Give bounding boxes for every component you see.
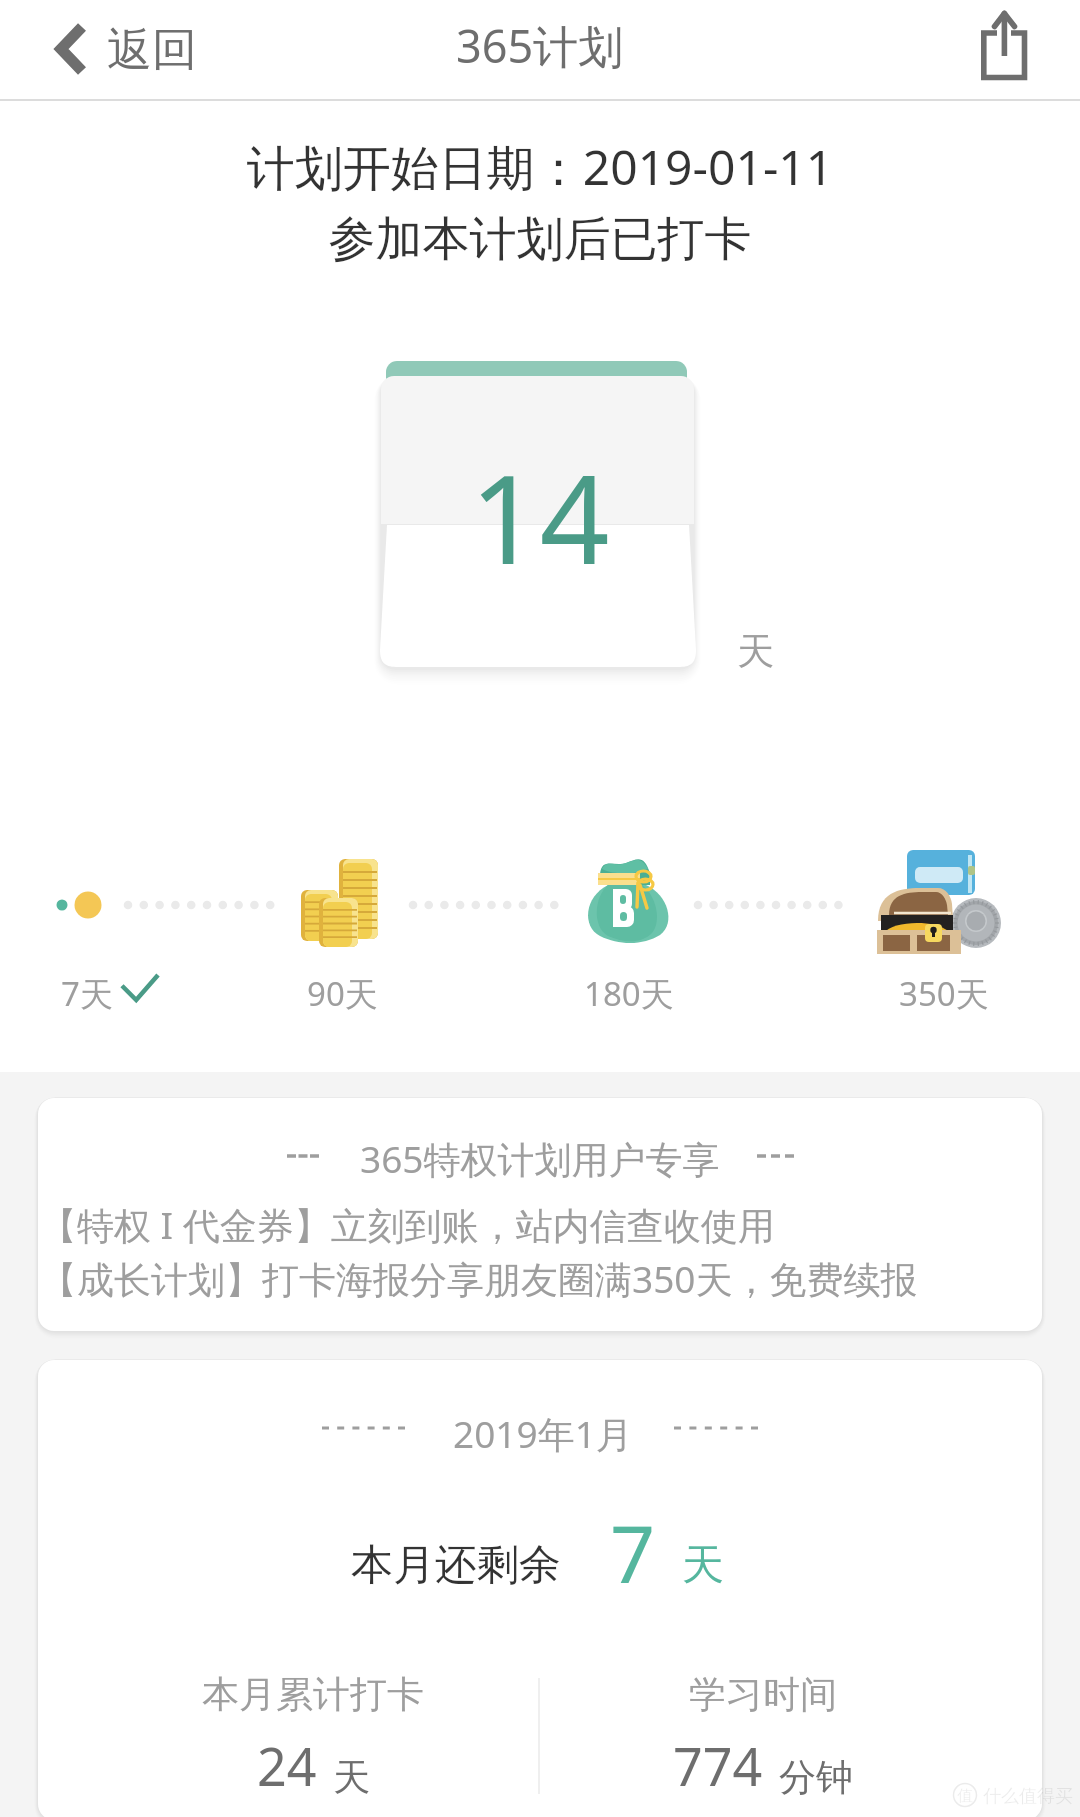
staticText: 【特权 I 代金券】立刻到账，站内信查收使用 — [40, 1199, 775, 1250]
staticText: 学习时间 — [689, 1671, 837, 1718]
staticText: 值 — [957, 1786, 973, 1806]
staticText: 7 — [610, 1499, 656, 1607]
staticText: 天 — [333, 1754, 370, 1801]
button[interactable]: 返回 — [0, 0, 221, 101]
button[interactable]: Share — [957, 0, 1057, 101]
staticText: 365计划 — [456, 15, 624, 76]
staticText: 天 — [737, 628, 774, 675]
staticText: 774 — [673, 1730, 763, 1801]
staticText: 24 — [257, 1730, 317, 1801]
staticText: 返回 — [107, 22, 197, 79]
staticText: 14 — [470, 434, 610, 600]
staticText: 2019年1月 — [453, 1408, 633, 1459]
staticText: 350天 — [899, 971, 989, 1016]
staticText: 365特权计划用户专享 — [360, 1133, 720, 1184]
staticText: 计划开始日期：2019-01-11 — [0, 134, 1080, 200]
staticText: 什么值得买 — [983, 1785, 1073, 1808]
staticText: 分钟 — [779, 1754, 853, 1801]
staticText: 参加本计划后已打卡 — [0, 210, 1080, 269]
staticText: 天 — [682, 1539, 724, 1592]
staticText: 本月还剩余 — [351, 1539, 561, 1592]
button[interactable]: 365特权计划用户专享 — [38, 1098, 1042, 1331]
button[interactable]: 2019年1月 — [38, 1360, 1042, 1817]
staticText: 7天 — [61, 971, 113, 1016]
staticText: 180天 — [584, 971, 674, 1016]
staticText: 【成长计划】打卡海报分享朋友圈满350天，免费续报 — [40, 1253, 918, 1304]
staticText: 本月累计打卡 — [202, 1671, 424, 1718]
staticText: 90天 — [307, 971, 378, 1016]
